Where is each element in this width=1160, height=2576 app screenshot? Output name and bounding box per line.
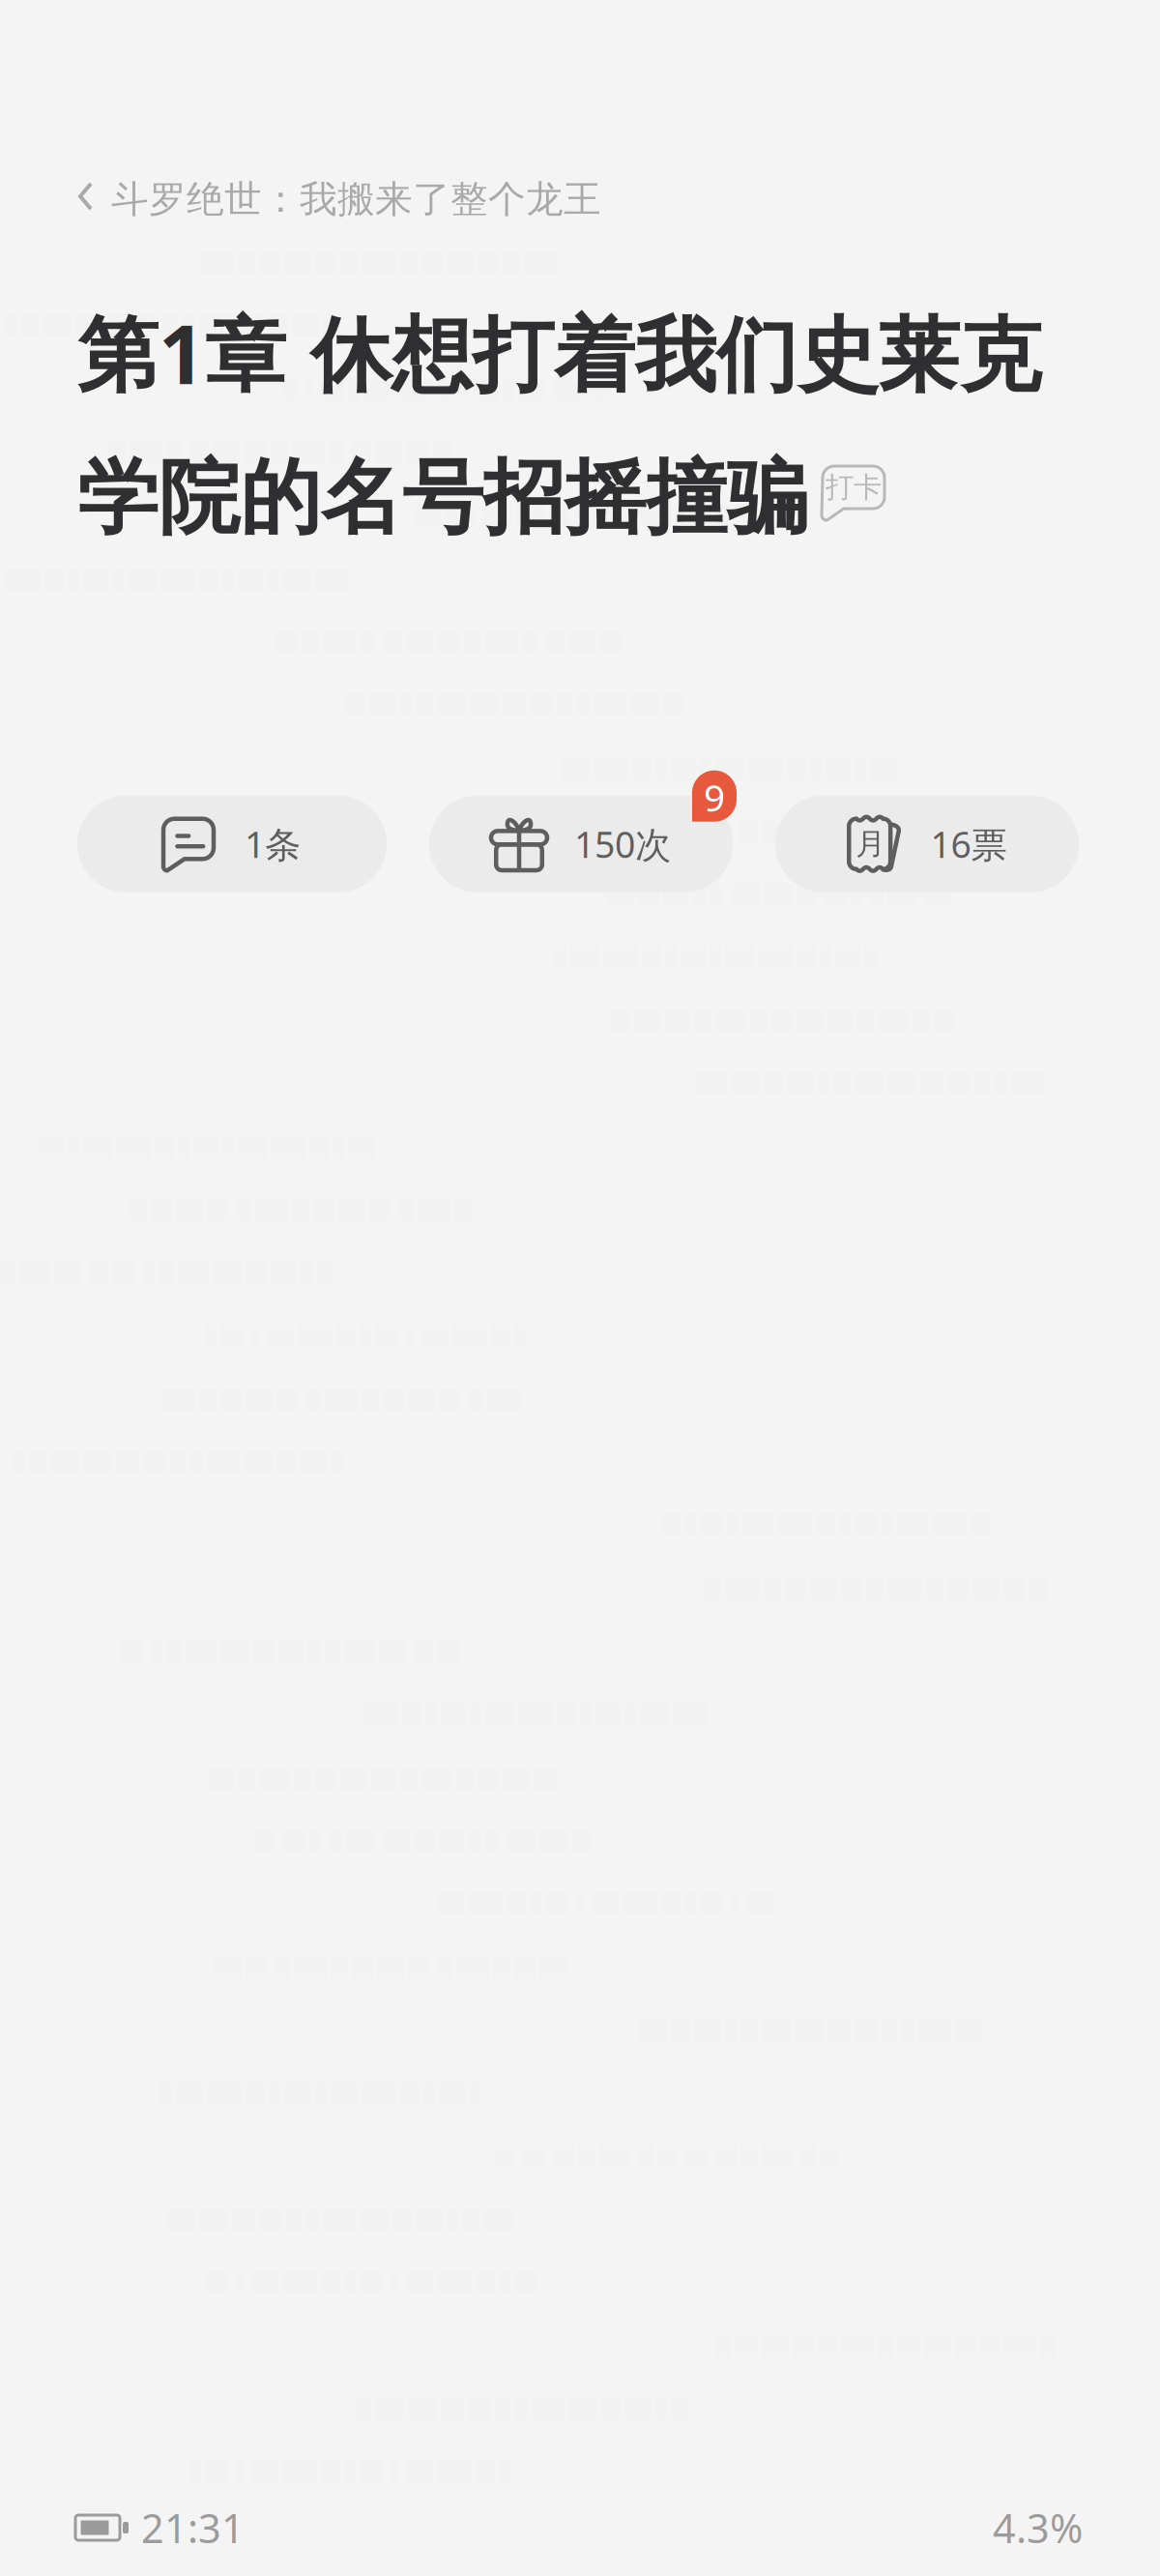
button[interactable]: 150次	[429, 796, 733, 892]
staticText: 打卡	[826, 470, 882, 505]
button[interactable]: 1条	[77, 796, 387, 892]
staticText: 4.3%	[993, 2501, 1083, 2554]
staticText: 斗罗绝世：我搬来了整个龙王	[111, 176, 601, 222]
staticText: 150次	[574, 820, 671, 868]
staticText: 16票	[930, 820, 1007, 868]
staticText: 1条	[245, 820, 301, 868]
staticText: 第1章 休想打着我们史莱克学院的名号招摇撞骗	[77, 299, 1041, 548]
button[interactable]: 月	[775, 796, 1079, 892]
staticText: 月	[856, 826, 886, 862]
button[interactable]: 打卡	[823, 466, 884, 519]
staticText: 21:31	[141, 2501, 245, 2554]
button[interactable]: 斗罗绝世：我搬来了整个龙王	[77, 175, 601, 223]
staticText: 9	[704, 772, 725, 822]
